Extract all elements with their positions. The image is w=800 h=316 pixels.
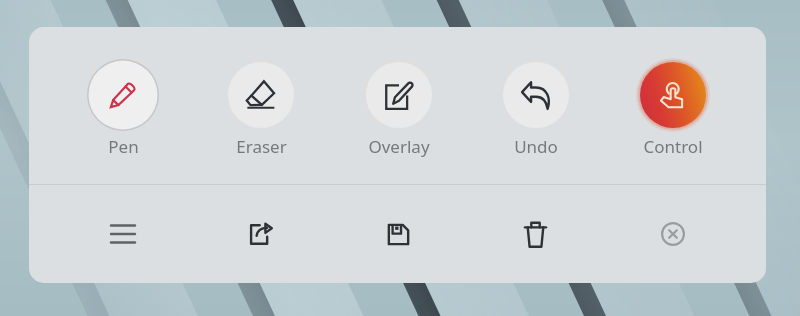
button[interactable]: Close bbox=[604, 185, 741, 283]
staticText: Pen bbox=[108, 135, 139, 158]
staticText: Undo bbox=[514, 135, 558, 158]
button[interactable]: Undo bbox=[467, 27, 604, 184]
button[interactable]: Control bbox=[604, 27, 741, 184]
staticText: Control bbox=[643, 135, 703, 158]
button[interactable]: Menu bbox=[54, 185, 192, 283]
button[interactable]: Delete bbox=[467, 185, 604, 283]
button[interactable]: Share bbox=[192, 185, 330, 283]
button[interactable]: Overlay bbox=[330, 27, 467, 184]
button[interactable]: Eraser bbox=[192, 27, 330, 184]
button[interactable]: Pen bbox=[54, 27, 192, 184]
staticText: Eraser bbox=[236, 135, 287, 158]
staticText: Overlay bbox=[368, 135, 430, 158]
button[interactable]: Save bbox=[330, 185, 467, 283]
